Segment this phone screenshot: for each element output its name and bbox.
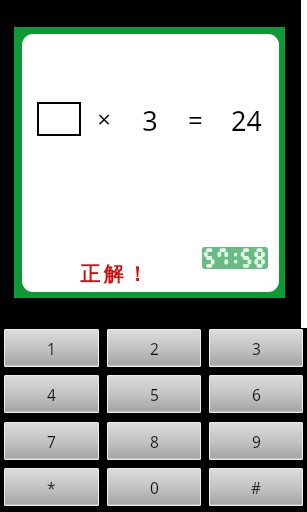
staticText: 7	[47, 431, 56, 452]
staticText: 4	[47, 384, 56, 405]
staticText: 3	[142, 102, 158, 132]
button[interactable]: 1	[4, 329, 99, 367]
button[interactable]: 3	[209, 329, 303, 367]
button[interactable]: 7	[4, 422, 99, 460]
staticText: 正解！	[80, 262, 151, 284]
button[interactable]: #	[209, 468, 303, 506]
button[interactable]: 6	[209, 375, 303, 413]
staticText: 24	[231, 102, 262, 132]
button[interactable]: 8	[107, 422, 201, 460]
staticText: 0	[150, 477, 159, 498]
button[interactable]: 2	[107, 329, 201, 367]
staticText: ×	[97, 102, 111, 132]
button[interactable]: *	[4, 468, 99, 506]
staticText: =	[188, 102, 203, 132]
staticText: 2	[150, 338, 159, 359]
staticText: *	[47, 477, 56, 498]
button[interactable]: 0	[107, 468, 201, 506]
staticText: 6	[252, 384, 261, 405]
button[interactable]: Answer input	[37, 102, 81, 136]
staticText: 3	[252, 338, 261, 359]
staticText: #	[251, 477, 262, 498]
button[interactable]: 4	[4, 375, 99, 413]
staticText: 9	[252, 431, 261, 452]
staticText: 8	[150, 431, 159, 452]
staticText: 5	[150, 384, 159, 405]
button[interactable]: 9	[209, 422, 303, 460]
button[interactable]: 5	[107, 375, 201, 413]
staticText: 1	[47, 338, 56, 359]
